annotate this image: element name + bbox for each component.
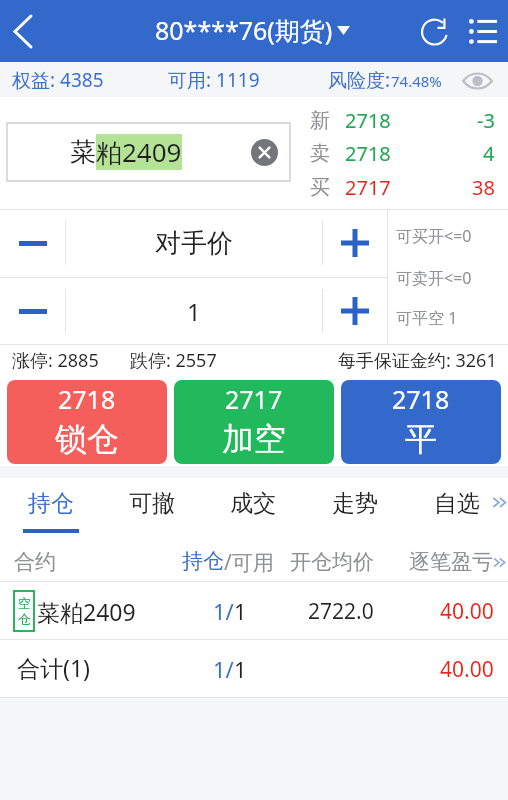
staticText: 2718 <box>345 140 391 167</box>
button[interactable]: 2718 <box>341 380 501 464</box>
button[interactable]: 可卖开<=0 <box>396 267 472 289</box>
staticText: 成交 <box>230 489 276 518</box>
staticText: 1 <box>234 654 247 684</box>
button[interactable]: 2718 <box>7 380 167 464</box>
staticText: 2718 <box>392 382 450 416</box>
staticText: 买 <box>310 175 330 200</box>
button[interactable]: Decrease <box>0 209 65 277</box>
staticText: 合约 <box>14 549 56 575</box>
staticText: 平 <box>405 419 437 459</box>
staticText: -3 <box>477 107 495 134</box>
staticText: 40.00 <box>440 655 494 684</box>
button[interactable]: 卖 <box>310 138 495 168</box>
staticText: 可用: 1119 <box>168 67 260 93</box>
button[interactable]: Decrease <box>0 277 65 345</box>
staticText: 可买开<=0 <box>396 225 472 247</box>
button[interactable]: 成交 <box>202 478 304 536</box>
button[interactable]: 可平空 1 <box>396 307 458 329</box>
staticText: 涨停: 2885 <box>12 348 99 373</box>
button[interactable]: More tabs <box>491 494 508 511</box>
button[interactable]: 持仓 <box>182 548 274 577</box>
staticText: 80****76(期货) <box>155 13 333 47</box>
staticText: 菜 <box>70 136 96 169</box>
staticText: 新 <box>310 108 330 133</box>
staticText: 菜粕2409 <box>37 596 136 627</box>
staticText: 锁仓 <box>55 419 119 459</box>
button[interactable]: 风险度: <box>328 67 442 93</box>
button[interactable]: Increase <box>323 209 387 277</box>
staticText: 空 <box>18 595 31 611</box>
button[interactable]: 菜 <box>7 123 290 181</box>
button[interactable]: 可撤 <box>101 478 202 536</box>
staticText: 对手价 <box>155 227 233 260</box>
staticText: 持仓 <box>182 548 224 574</box>
button[interactable]: 权益: 4385 <box>12 67 104 93</box>
button[interactable]: 逐笔盈亏 <box>409 549 506 575</box>
button[interactable]: 自选 <box>406 478 508 536</box>
staticText: 自选 <box>434 489 480 518</box>
staticText: 开仓均价 <box>290 549 374 575</box>
button[interactable]: 2717 <box>174 380 334 464</box>
button[interactable]: 持仓 <box>0 478 101 536</box>
staticText: 权益: 4385 <box>12 67 104 93</box>
button[interactable]: 空 <box>0 582 508 640</box>
staticText: 2722.0 <box>308 597 374 626</box>
staticText: 加空 <box>222 419 286 459</box>
button[interactable]: 走势 <box>304 478 406 536</box>
staticText: 每手保证金约: 3261 <box>338 348 497 373</box>
staticText: 1 <box>187 295 201 328</box>
staticText: 走势 <box>332 489 378 518</box>
staticText: 2718 <box>58 382 116 416</box>
button[interactable]: 可买开<=0 <box>396 225 472 247</box>
staticText: 1/ <box>213 654 234 684</box>
button[interactable]: 对手价 <box>66 209 322 277</box>
button[interactable]: Toggle balance visibility <box>458 63 497 98</box>
button[interactable]: Back <box>0 0 50 62</box>
staticText: 4 <box>483 140 495 167</box>
button[interactable]: 1 <box>66 277 322 345</box>
staticText: 74.48% <box>391 71 442 91</box>
button[interactable]: Increase <box>323 277 387 345</box>
button[interactable]: 买 <box>310 172 495 202</box>
staticText: 2717 <box>345 174 391 201</box>
staticText: 跌停: 2557 <box>130 348 217 373</box>
staticText: 仓 <box>18 611 31 627</box>
button[interactable]: 合约 <box>14 549 56 575</box>
staticText: 可平空 1 <box>396 307 458 329</box>
staticText: 可撤 <box>129 489 175 518</box>
staticText: 1/ <box>213 596 234 626</box>
staticText: 逐笔盈亏 <box>409 549 493 575</box>
staticText: 合计(1) <box>17 652 90 683</box>
staticText: 40.00 <box>440 597 494 626</box>
button[interactable]: 可用: 1119 <box>168 67 260 93</box>
staticText: 38 <box>472 174 495 201</box>
button[interactable]: 开仓均价 <box>290 549 374 575</box>
button[interactable]: Refresh <box>408 0 460 62</box>
staticText: 1 <box>234 596 247 626</box>
staticText: 粕2409 <box>96 134 182 170</box>
button[interactable]: Clear text <box>250 138 278 166</box>
staticText: 2718 <box>345 107 391 134</box>
staticText: 卖 <box>310 141 330 166</box>
staticText: /可用 <box>224 548 274 577</box>
staticText: 风险度: <box>328 67 391 93</box>
button[interactable]: Menu <box>458 0 508 62</box>
button[interactable]: 新 <box>310 105 495 135</box>
staticText: 2717 <box>225 382 283 416</box>
button[interactable]: 80****76(期货) <box>155 13 350 47</box>
button[interactable]: 合计(1) <box>0 640 508 698</box>
staticText: 可卖开<=0 <box>396 267 472 289</box>
staticText: 持仓 <box>28 489 74 518</box>
